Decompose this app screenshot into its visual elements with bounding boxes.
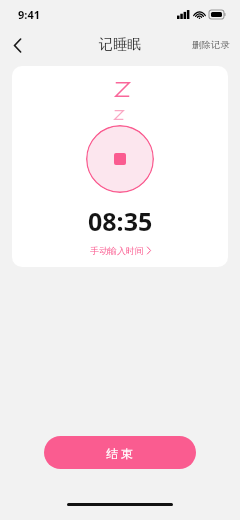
staticText: 记睡眠: [99, 36, 141, 54]
staticText: 结 束: [106, 445, 134, 461]
button[interactable]: 手动输入时间: [84, 243, 157, 258]
staticText: 删除记录: [192, 39, 230, 51]
staticText: 9:41: [18, 7, 40, 22]
button[interactable]: 结 束: [44, 436, 196, 469]
button[interactable]: Stop: [86, 125, 154, 193]
button[interactable]: Back: [0, 28, 34, 62]
staticText: 手动输入时间: [90, 245, 144, 256]
button[interactable]: 删除记录: [182, 31, 240, 59]
staticText: 08:35: [88, 204, 153, 238]
